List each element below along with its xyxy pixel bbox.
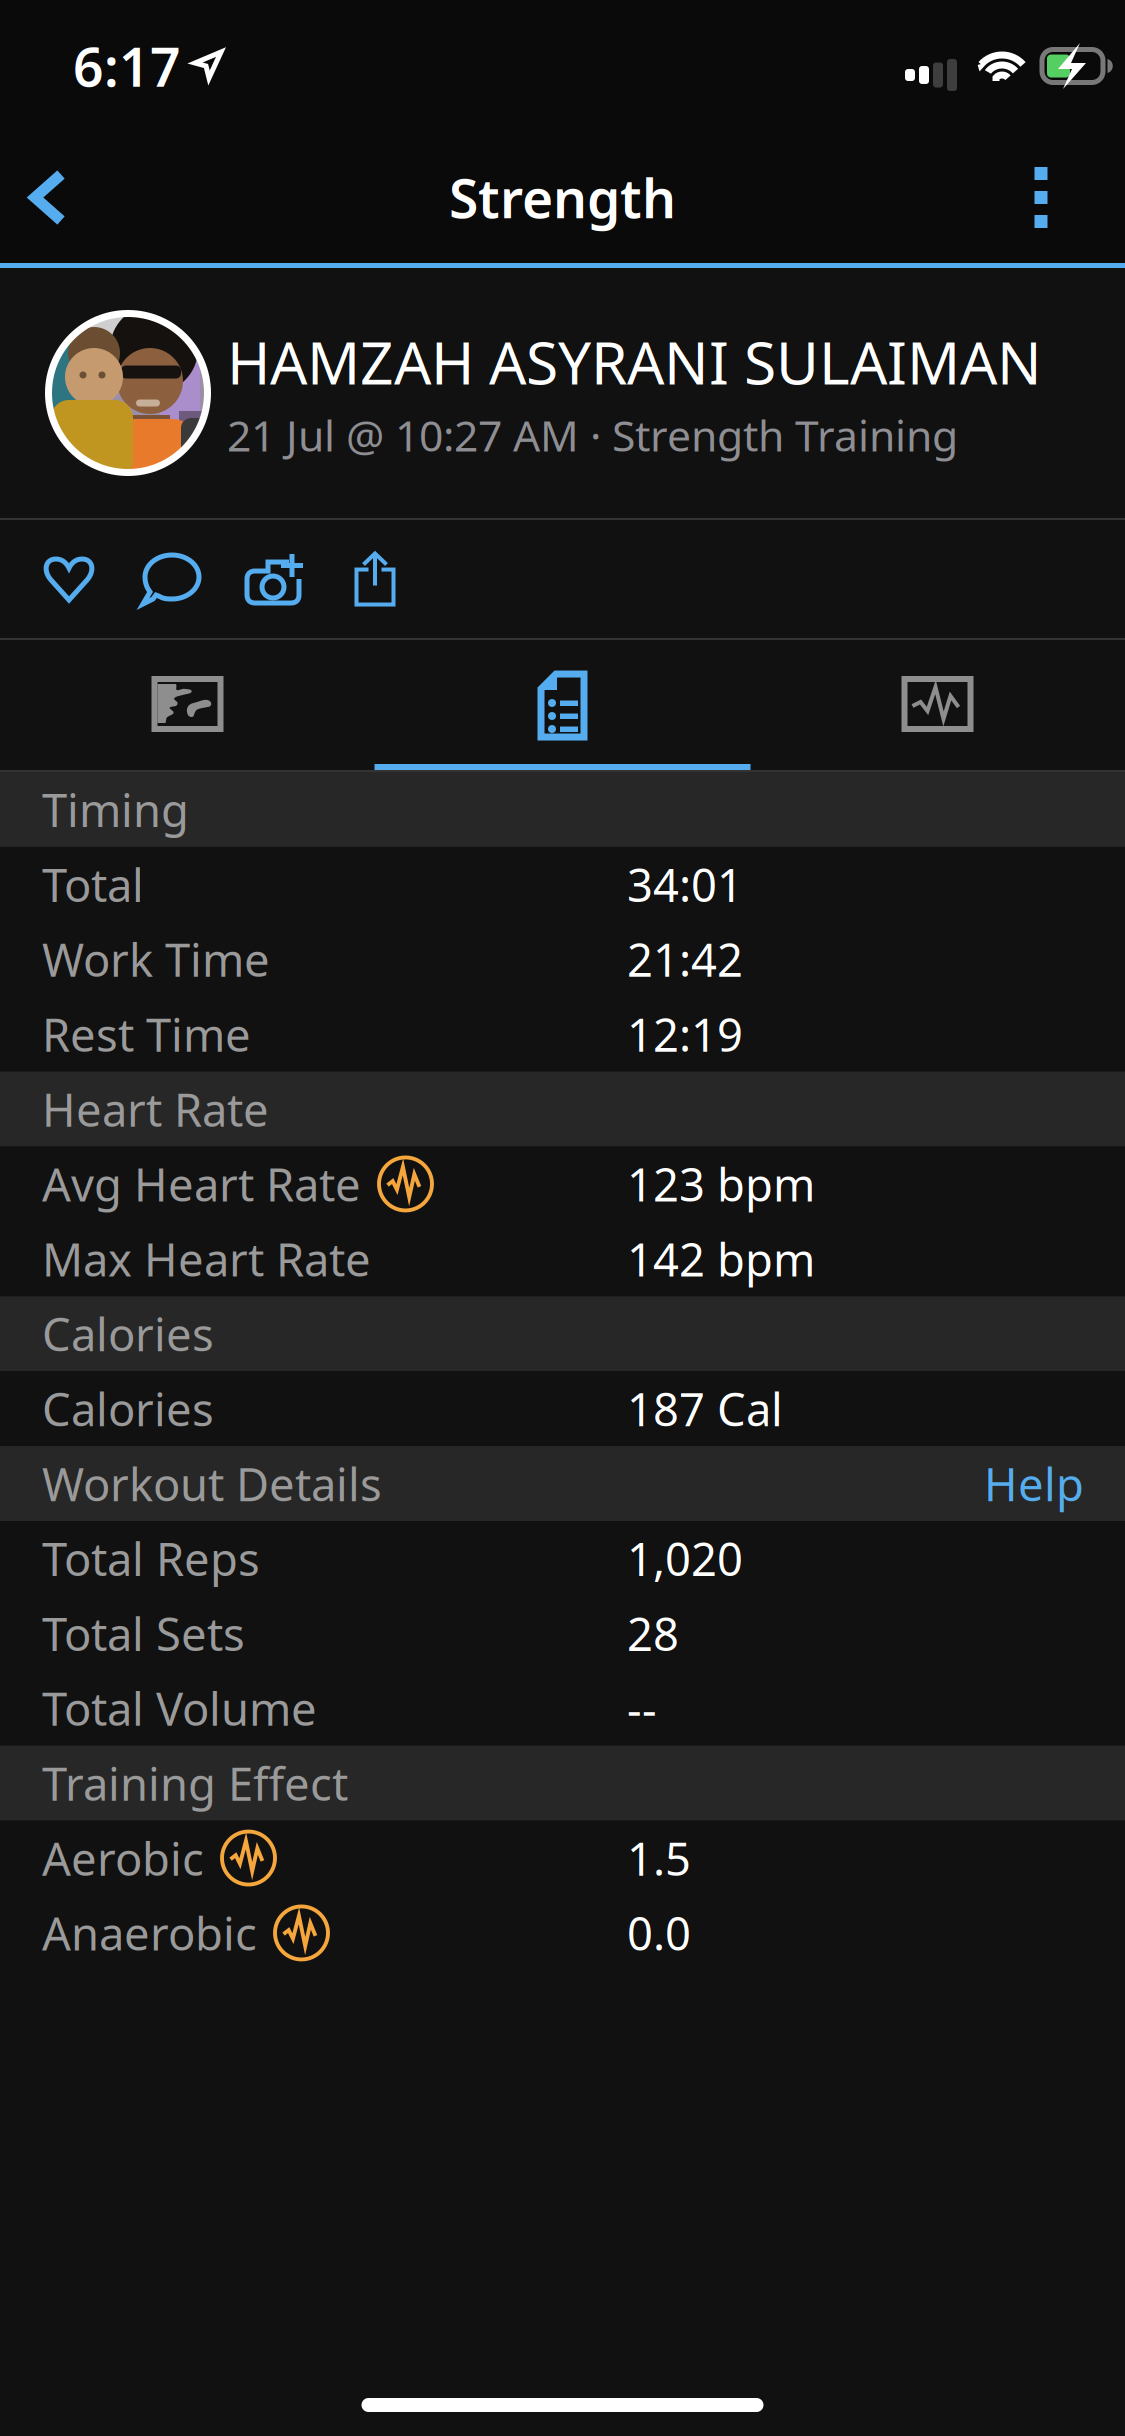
button[interactable]: Anaerobic [0,1895,1125,1970]
staticText: Timing [42,779,189,839]
staticText: 6:17 [73,31,181,101]
staticText: Total Sets [42,1603,245,1663]
button[interactable]: More options [993,135,1089,259]
staticText: HAMZAH ASYRANI SULAIMAN [227,323,1042,401]
staticText: Training Effect [42,1753,348,1813]
button[interactable]: Calories [0,1371,1125,1446]
button[interactable]: Total [0,847,1125,922]
button[interactable]: Total Reps [0,1521,1125,1596]
staticText: 28 [627,1603,679,1663]
staticText: 21:42 [627,929,743,989]
button[interactable]: Share [324,520,426,638]
button[interactable]: Add photo [222,520,324,638]
staticText: Total Reps [42,1528,260,1588]
staticText: Help [984,1453,1084,1514]
staticText: Rest Time [42,1004,251,1064]
staticText: -- [627,1678,657,1738]
staticText: Aerobic [42,1828,204,1888]
button[interactable]: Work Time [0,922,1125,997]
staticText: 1.5 [627,1828,691,1888]
staticText: Total Volume [42,1678,317,1738]
button[interactable]: Avg Heart Rate [0,1146,1125,1221]
staticText: 34:01 [627,854,743,914]
staticText: Anaerobic [42,1903,257,1963]
button[interactable]: Help [966,1435,1102,1532]
button[interactable]: Map [0,640,375,770]
staticText: Heart Rate [42,1079,269,1139]
staticText: Calories [42,1378,214,1439]
button[interactable]: HAMZAH ASYRANI SULAIMAN [0,268,1125,518]
staticText: Work Time [42,929,270,989]
staticText: Calories [42,1304,214,1364]
staticText: 1,020 [627,1528,743,1588]
button[interactable]: Total Sets [0,1596,1125,1671]
button[interactable]: Rest Time [0,997,1125,1072]
button[interactable]: Comment [120,520,222,638]
button[interactable]: Details [375,640,750,770]
staticText: Max Heart Rate [42,1229,371,1289]
button[interactable]: Total Volume [0,1671,1125,1746]
staticText: Total [42,854,144,914]
staticText: Avg Heart Rate [42,1154,361,1214]
staticText: 123 bpm [627,1154,815,1214]
staticText: Workout Details [42,1453,382,1514]
button[interactable]: Charts [750,640,1125,770]
button[interactable]: Max Heart Rate [0,1221,1125,1296]
button[interactable]: Like [18,520,120,638]
staticText: 21 Jul @ 10:27 AM · Strength Training [227,407,958,463]
staticText: 12:19 [627,1004,743,1064]
staticText: Strength [449,162,676,233]
staticText: 142 bpm [627,1229,815,1289]
staticText: 187 Cal [627,1378,783,1439]
button[interactable]: Aerobic [0,1821,1125,1895]
button[interactable]: Back [0,135,96,259]
staticText: 0.0 [627,1903,691,1963]
